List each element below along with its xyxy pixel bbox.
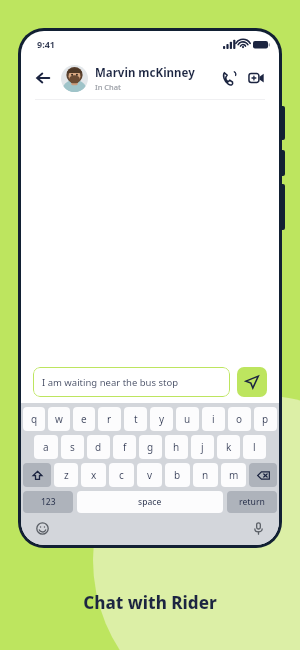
button[interactable]: I am waiting near the bus stop [33, 367, 230, 397]
staticText: Chat with Rider [83, 591, 217, 614]
button[interactable]: e [73, 407, 95, 431]
button[interactable]: n [193, 463, 218, 487]
button[interactable]: return [227, 491, 277, 513]
button[interactable]: y [150, 407, 173, 431]
staticText: h [173, 440, 180, 454]
staticText: b [174, 468, 181, 482]
staticText: p [262, 412, 269, 426]
staticText: x [91, 468, 97, 482]
staticText: z [64, 468, 69, 482]
staticText: o [236, 412, 243, 426]
button[interactable]: b [165, 463, 190, 487]
button[interactable]: o [228, 407, 251, 431]
button[interactable]: 123 [23, 491, 73, 513]
button[interactable]: g [139, 435, 162, 459]
staticText: d [95, 440, 102, 454]
button[interactable]: m [221, 463, 246, 487]
button[interactable]: u [176, 407, 199, 431]
button[interactable]: Voice input [249, 519, 267, 537]
button[interactable]: z [54, 463, 78, 487]
staticText: r [107, 412, 112, 426]
staticText: s [70, 440, 75, 454]
staticText: w [55, 412, 63, 426]
staticText: g [147, 440, 154, 454]
staticText: j [201, 440, 204, 454]
button[interactable]: c [109, 463, 134, 487]
button[interactable]: s [61, 435, 84, 459]
button[interactable]: w [48, 407, 70, 431]
staticText: i [212, 412, 215, 426]
staticText: e [81, 412, 87, 426]
button[interactable]: a [34, 435, 58, 459]
button[interactable]: Key [249, 463, 277, 487]
staticText: m [229, 468, 239, 482]
button[interactable]: q [23, 407, 45, 431]
staticText: I am waiting near the bus stop [42, 376, 179, 389]
staticText: y [159, 412, 165, 426]
button[interactable]: x [81, 463, 106, 487]
button[interactable]: Profile photo [61, 65, 88, 92]
staticText: space [138, 496, 162, 508]
staticText: q [31, 412, 38, 426]
button[interactable]: Back [32, 67, 54, 89]
button[interactable]: space [77, 491, 223, 513]
staticText: Marvin mcKinney [95, 65, 195, 81]
button[interactable]: h [165, 435, 188, 459]
staticText: c [119, 468, 124, 482]
staticText: 123 [41, 496, 56, 508]
staticText: f [123, 440, 127, 454]
button[interactable]: l [243, 435, 266, 459]
staticText: u [184, 412, 191, 426]
staticText: 9:41 [37, 38, 55, 50]
staticText: t [134, 412, 138, 426]
staticText: In Chat [95, 82, 121, 92]
staticText: n [202, 468, 209, 482]
staticText: a [43, 440, 49, 454]
staticText: return [239, 496, 265, 508]
button[interactable]: j [191, 435, 214, 459]
button[interactable]: p [254, 407, 277, 431]
button[interactable]: r [98, 407, 121, 431]
staticText: v [147, 468, 153, 482]
button[interactable]: Video call [244, 66, 268, 90]
button[interactable]: Key [23, 463, 51, 487]
button[interactable]: v [137, 463, 162, 487]
button[interactable]: Emoji [33, 519, 51, 537]
button[interactable]: f [113, 435, 136, 459]
button[interactable]: k [217, 435, 240, 459]
button[interactable]: i [202, 407, 225, 431]
staticText: k [226, 440, 232, 454]
staticText: l [253, 440, 256, 454]
button[interactable]: Send [237, 367, 267, 397]
button[interactable]: Voice call [217, 66, 241, 90]
button[interactable]: d [87, 435, 110, 459]
button[interactable]: t [124, 407, 147, 431]
